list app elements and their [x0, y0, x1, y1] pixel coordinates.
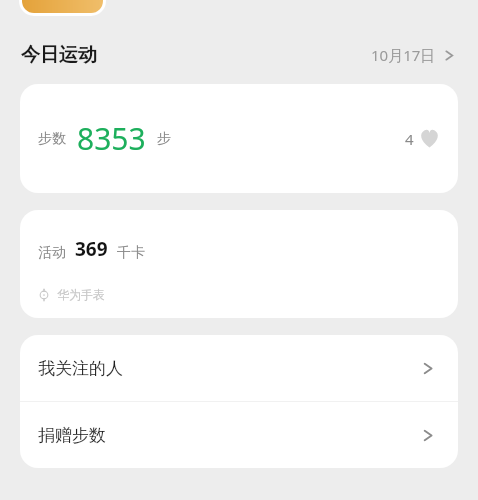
staticText: 我关注的人	[38, 358, 123, 379]
staticText: 捐赠步数	[38, 425, 106, 446]
staticText: 10月17日	[371, 45, 436, 65]
staticText: 活动	[38, 244, 66, 262]
staticText: 8353	[77, 118, 146, 159]
staticText: 4	[405, 129, 414, 149]
button[interactable]: 10月17日	[371, 45, 458, 65]
staticText: 千卡	[117, 244, 145, 262]
button[interactable]: 我关注的人	[20, 335, 458, 401]
staticText: 华为手表	[57, 287, 105, 302]
staticText: 369	[75, 236, 108, 262]
staticText: 步数	[38, 130, 66, 148]
staticText: 步	[157, 130, 171, 148]
button[interactable]: 活动	[20, 210, 458, 318]
button[interactable]: Activity ring badge	[22, 0, 103, 13]
staticText: 今日运动	[21, 43, 97, 67]
button[interactable]: 步数	[20, 84, 458, 193]
button[interactable]: 捐赠步数	[20, 402, 458, 468]
